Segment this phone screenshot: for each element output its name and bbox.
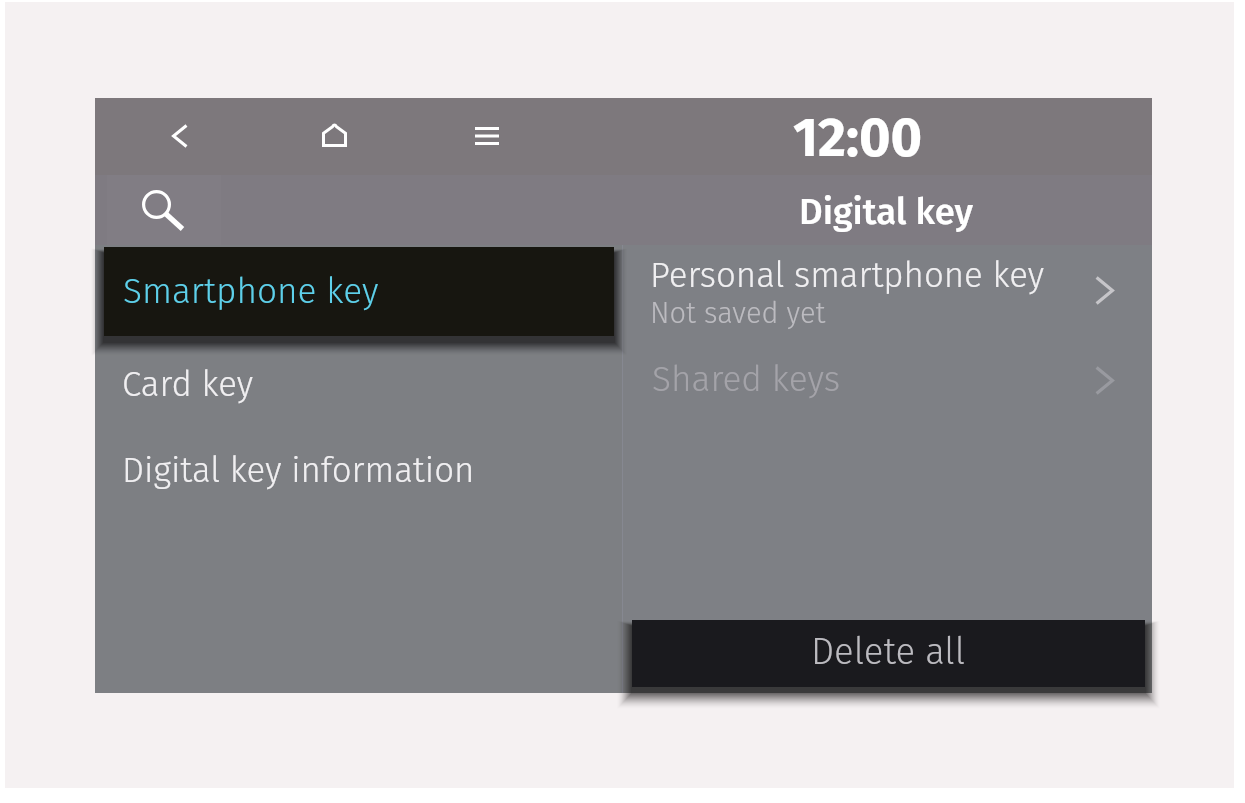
button[interactable]: Delete all (632, 620, 1145, 687)
staticText: Not saved yet (650, 296, 826, 331)
button[interactable]: Search (107, 175, 221, 245)
staticText: Digital key information (122, 449, 475, 491)
button[interactable]: Personal smartphone key (623, 245, 1152, 335)
button[interactable]: Menu (447, 98, 527, 175)
button[interactable]: Digital key information (95, 426, 622, 515)
staticText: Shared keys (652, 358, 1095, 400)
staticText: Card key (122, 363, 254, 405)
button[interactable]: Card key (95, 340, 622, 429)
staticText: 12:00 (793, 106, 923, 171)
staticText: Personal smartphone key (650, 254, 1045, 296)
staticText: Digital key (799, 190, 973, 234)
staticText: Delete all (811, 630, 966, 674)
button[interactable]: Shared keys (623, 335, 1152, 425)
button[interactable]: Home (294, 98, 374, 175)
button[interactable]: Back (140, 98, 220, 175)
staticText: Smartphone key (123, 270, 379, 312)
button[interactable]: Smartphone key (104, 247, 614, 336)
